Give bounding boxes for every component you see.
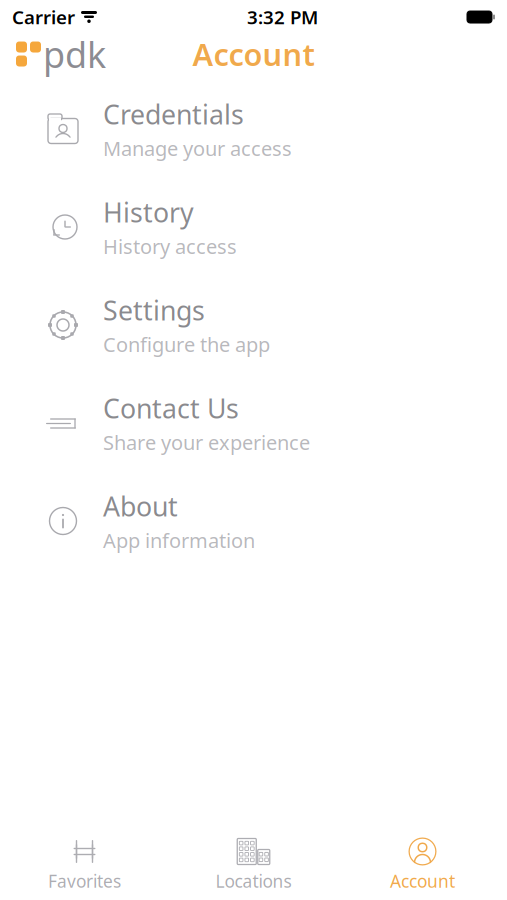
staticText: App information: [103, 527, 255, 553]
staticText: 3:32 PM: [247, 5, 318, 29]
staticText: Account: [390, 869, 455, 892]
staticText: Share your experience: [103, 429, 310, 455]
staticText: Carrier: [12, 5, 75, 29]
staticText: Configure the app: [103, 331, 270, 357]
button[interactable]: Credentials: [0, 80, 507, 178]
button[interactable]: Favorites: [0, 834, 169, 896]
staticText: History access: [103, 233, 237, 259]
staticText: Credentials: [103, 96, 244, 132]
button[interactable]: History: [0, 178, 507, 276]
staticText: Manage your access: [103, 135, 292, 161]
button[interactable]: About: [0, 472, 507, 570]
staticText: Favorites: [48, 869, 121, 892]
staticText: History: [103, 194, 194, 230]
staticText: Account: [192, 34, 314, 74]
button[interactable]: Settings: [0, 276, 507, 374]
button[interactable]: Account: [338, 834, 507, 896]
staticText: Locations: [215, 869, 291, 892]
staticText: pdk: [43, 30, 106, 78]
staticText: About: [103, 488, 178, 524]
staticText: Settings: [103, 292, 205, 328]
button[interactable]: Locations: [169, 834, 338, 896]
staticText: Contact Us: [103, 390, 239, 426]
button[interactable]: Contact Us: [0, 374, 507, 472]
